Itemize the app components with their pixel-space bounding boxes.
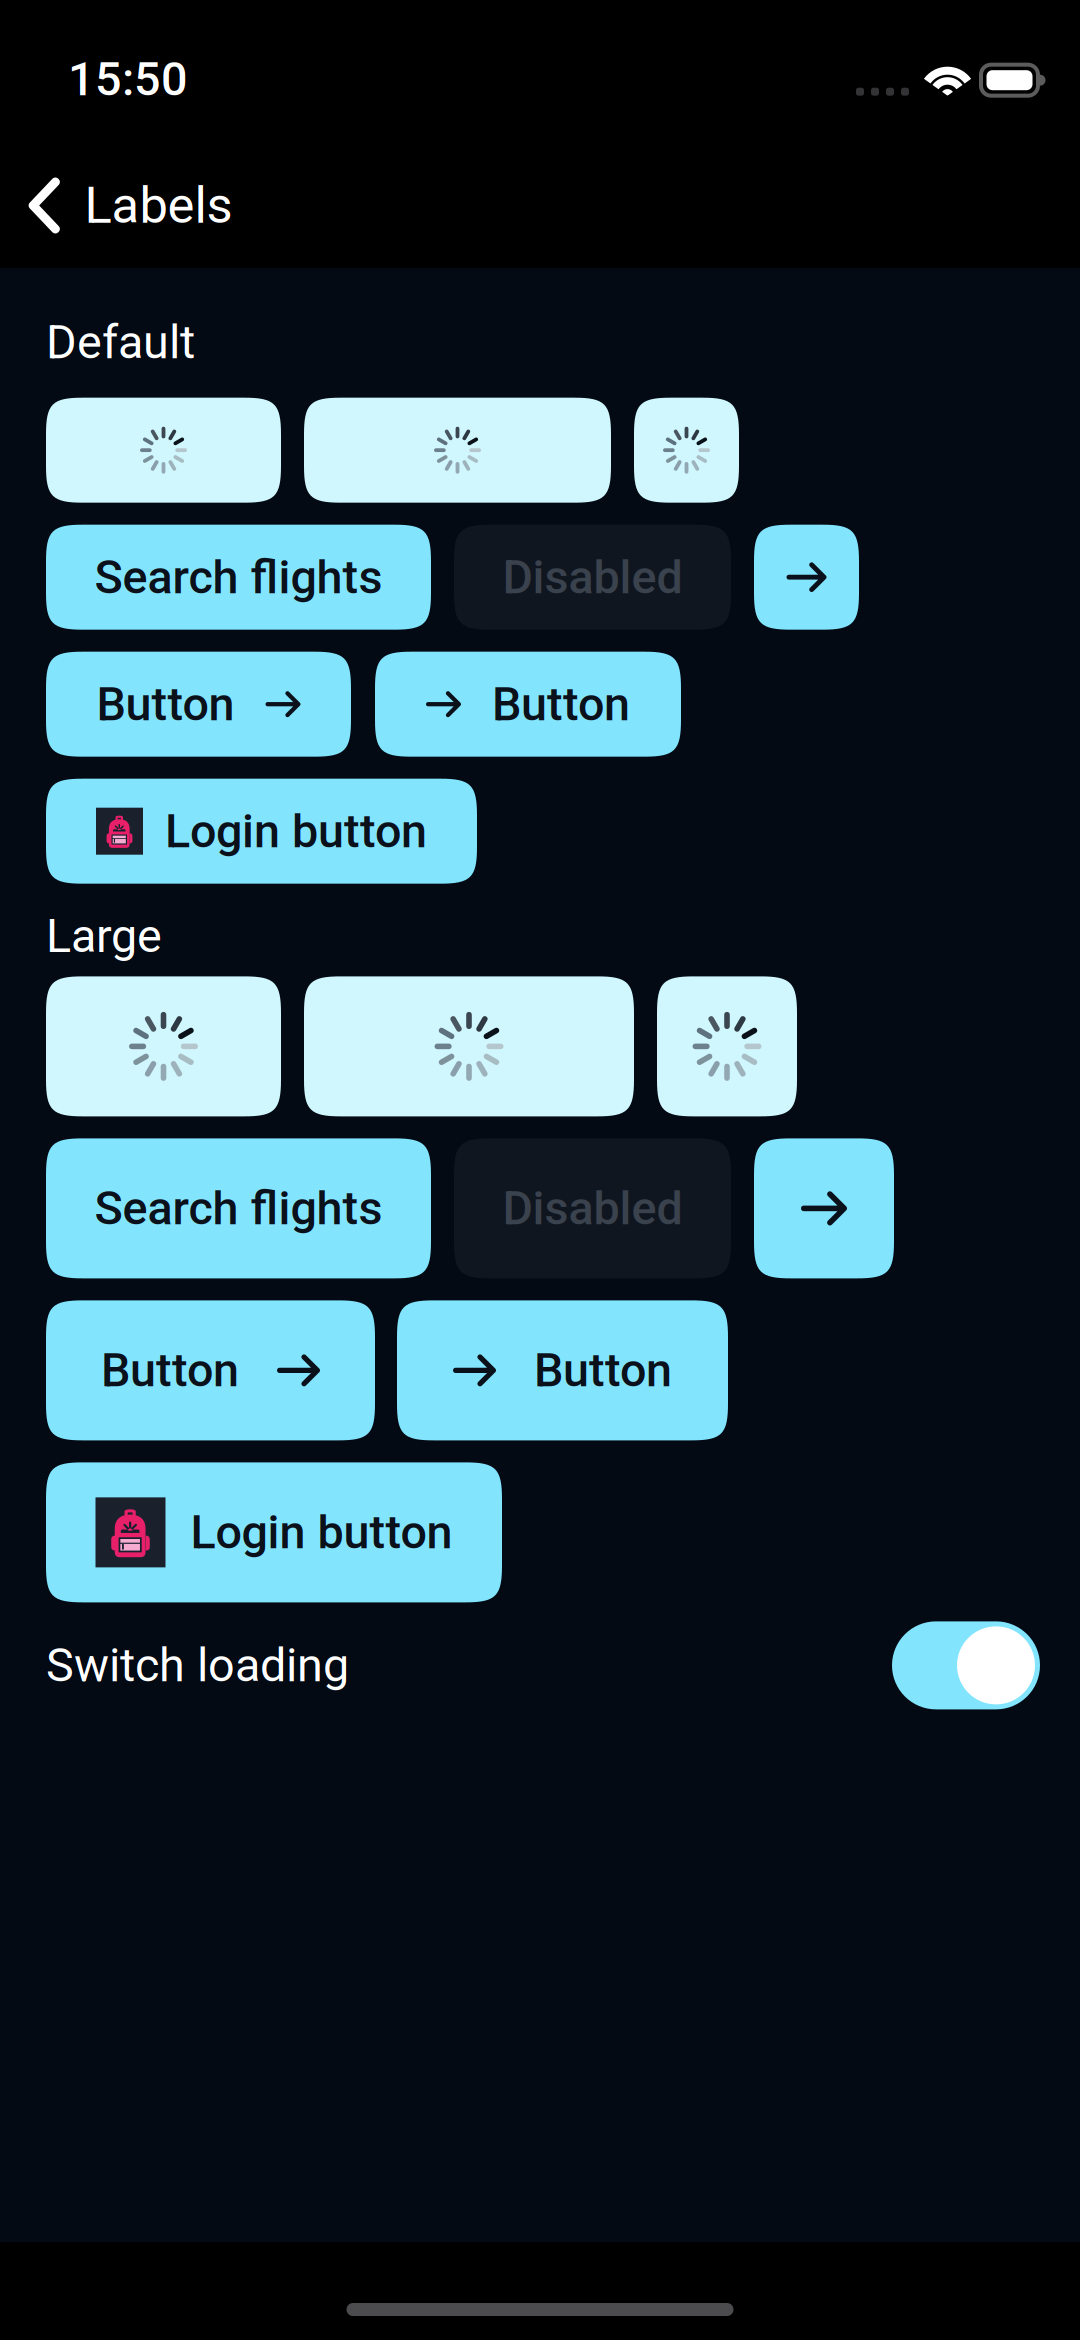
staticText: Button [534,1343,672,1398]
staticText: Button [492,677,630,731]
staticText: Login button [165,804,427,858]
staticText: Large [46,909,162,963]
button[interactable]: Disabled [454,525,731,630]
button[interactable]: Button [397,1300,728,1440]
button[interactable]: Search flights [46,525,431,630]
button[interactable]: Loading [46,976,281,1116]
button[interactable]: Switch loading [892,1621,1040,1709]
button[interactable]: Button [46,652,351,757]
button[interactable]: Loading [657,976,797,1116]
staticText: Disabled [502,550,682,604]
button[interactable]: Continue [754,1138,894,1278]
button[interactable]: Loading [634,398,739,503]
button[interactable]: Button [46,1300,375,1440]
staticText: Button [96,677,234,731]
staticText: Search flights [94,550,382,604]
staticText: Labels [84,176,232,235]
staticText: 15:50 [68,52,188,107]
staticText: Button [101,1343,239,1398]
button[interactable]: Labels [0,136,256,268]
button[interactable]: Loading [304,398,611,503]
button[interactable]: Disabled [454,1138,731,1278]
staticText: Search flights [94,1181,382,1236]
button[interactable]: Button [375,652,681,757]
staticText: Login button [190,1505,452,1560]
button[interactable]: Search flights [46,1138,431,1278]
button[interactable]: Loading [304,976,634,1116]
button[interactable]: Loading [46,398,281,503]
staticText: Default [46,315,195,370]
staticText: Disabled [502,1181,682,1236]
staticText: Switch loading [46,1638,349,1693]
button[interactable]: Continue [754,525,859,630]
button[interactable]: Login button [46,779,477,884]
button[interactable]: Login button [46,1462,502,1602]
